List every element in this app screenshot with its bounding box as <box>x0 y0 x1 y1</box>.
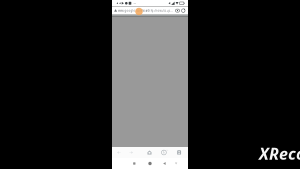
staticText: www.google.com/search?q=how+to+publish+a… <box>118 9 173 12</box>
button[interactable]: Back <box>114 147 125 158</box>
button[interactable]: Forward <box>125 147 136 158</box>
button[interactable]: Hide keyboard <box>171 158 182 169</box>
staticText: XRecorder <box>259 143 300 164</box>
button[interactable]: Back <box>159 158 170 169</box>
button[interactable]: Home <box>144 147 155 158</box>
button[interactable]: Address bar <box>112 6 188 15</box>
button[interactable]: Tabs <box>158 147 169 158</box>
button[interactable]: Account <box>174 147 185 158</box>
staticText: 6 <box>163 151 165 154</box>
button[interactable]: Recent apps <box>129 158 140 169</box>
button[interactable]: Home <box>144 158 155 169</box>
